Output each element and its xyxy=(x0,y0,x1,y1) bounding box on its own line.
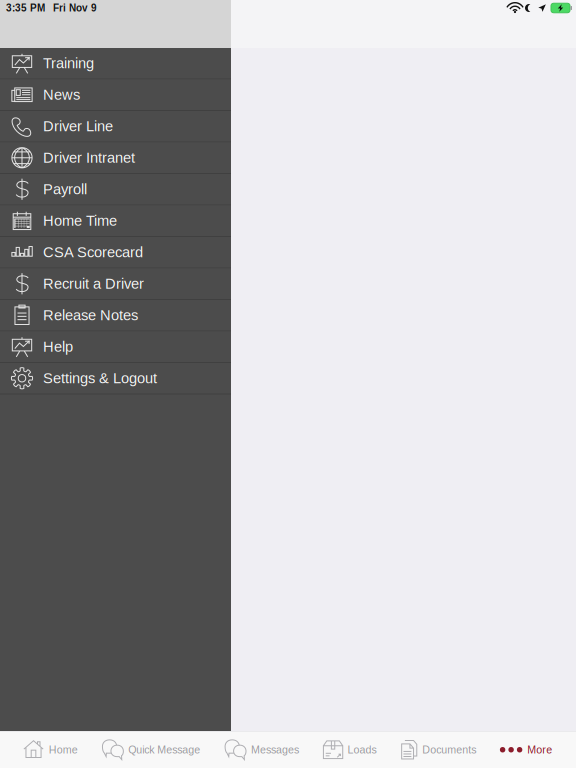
staticText: Home xyxy=(49,744,78,756)
staticText: CSA Scorecard xyxy=(43,244,143,260)
staticText: Loads xyxy=(348,744,377,756)
button[interactable]: Home xyxy=(24,731,78,768)
staticText: Training xyxy=(43,55,94,71)
staticText: Documents xyxy=(422,744,476,756)
button[interactable]: Help xyxy=(0,331,231,363)
staticText: Release Notes xyxy=(43,307,138,323)
staticText: Messages xyxy=(251,744,299,756)
button[interactable]: Training xyxy=(0,48,231,79)
button[interactable]: News xyxy=(0,79,231,111)
staticText: Home Time xyxy=(43,213,117,229)
button[interactable]: Documents xyxy=(400,731,476,768)
button[interactable]: Quick Message xyxy=(101,731,200,768)
button[interactable]: Recruit a Driver xyxy=(0,268,231,300)
staticText: Driver Line xyxy=(43,118,113,134)
staticText: Fri Nov 9 xyxy=(53,2,97,14)
staticText: 3:35 PM xyxy=(6,2,45,14)
staticText: Recruit a Driver xyxy=(43,276,144,292)
staticText: Settings & Logout xyxy=(43,370,157,386)
staticText: More xyxy=(527,744,552,756)
staticText: News xyxy=(43,87,80,103)
staticText: Driver Intranet xyxy=(43,150,135,166)
button[interactable]: Messages xyxy=(224,731,299,768)
button[interactable]: Driver Intranet xyxy=(0,142,231,174)
staticText: Help xyxy=(43,339,73,355)
button[interactable]: Loads xyxy=(323,731,377,768)
button[interactable]: Release Notes xyxy=(0,300,231,331)
staticText: Payroll xyxy=(43,181,87,197)
staticText: Quick Message xyxy=(128,744,200,756)
button[interactable]: Payroll xyxy=(0,174,231,205)
button[interactable]: Settings & Logout xyxy=(0,363,231,394)
button[interactable]: Driver Line xyxy=(0,111,231,142)
button[interactable]: CSA Scorecard xyxy=(0,237,231,268)
button[interactable]: More xyxy=(500,731,552,768)
button[interactable]: Home Time xyxy=(0,205,231,237)
